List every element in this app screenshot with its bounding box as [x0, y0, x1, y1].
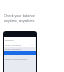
staticText: Main Currency: [5, 47, 22, 50]
staticText: Main Currency: [5, 43, 22, 46]
staticText: anytime, anywhere: [4, 18, 35, 23]
staticText: Check your balance: [4, 13, 36, 18]
staticText: Recent transactions: [5, 57, 28, 60]
staticText: Balance: [5, 38, 14, 41]
